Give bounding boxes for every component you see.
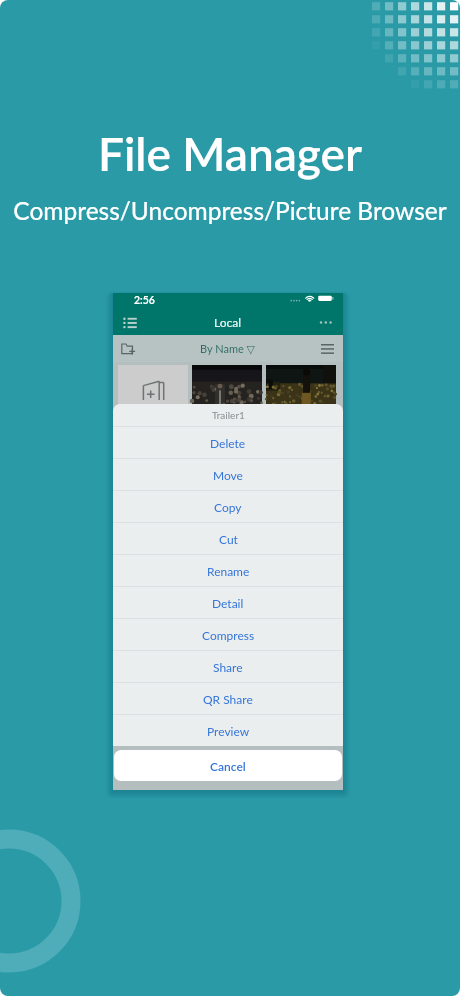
button[interactable]: New folder [118, 338, 140, 360]
staticText: By Name ▽ [200, 342, 256, 355]
staticText: Compress/Uncompress/Picture Browser [0, 196, 460, 225]
button[interactable]: QR Share [113, 683, 343, 714]
staticText: Rename [207, 564, 250, 578]
button[interactable]: Delete [113, 427, 343, 458]
staticText: Delete [210, 436, 246, 450]
button[interactable]: More options [315, 311, 337, 333]
button[interactable]: Detail [113, 587, 343, 618]
staticText: Trailer1 [212, 409, 245, 421]
staticText: File Manager [0, 126, 460, 181]
button[interactable]: Share [113, 651, 343, 682]
button[interactable]: Compress [113, 619, 343, 650]
button[interactable]: Cut [113, 523, 343, 554]
button[interactable]: Cancel [114, 750, 342, 781]
button[interactable]: Preview [113, 715, 343, 746]
staticText: Preview [207, 724, 250, 738]
staticText: Copy [214, 500, 242, 514]
staticText: Detail [212, 596, 244, 610]
button[interactable]: Copy [113, 491, 343, 522]
staticText: QR Share [203, 692, 253, 706]
button[interactable]: Rename [113, 555, 343, 586]
staticText: 2:56 [134, 294, 155, 307]
staticText: Share [213, 660, 243, 674]
button[interactable]: Move [113, 459, 343, 490]
button[interactable]: Menu [316, 338, 338, 360]
staticText: Move [213, 468, 243, 482]
staticText: Compress [202, 628, 255, 642]
staticText: Local [214, 315, 242, 329]
staticText: Cancel [210, 759, 246, 773]
button[interactable]: List view [119, 311, 141, 333]
staticText: Cut [219, 532, 238, 546]
